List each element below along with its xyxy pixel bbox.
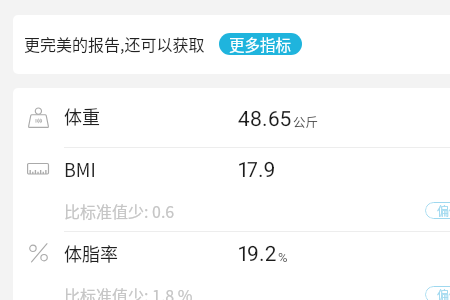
staticText: 公斤 [293, 112, 319, 130]
staticText: 偏低 [437, 202, 450, 219]
staticText: 比标准值少: 1.8 % [64, 283, 193, 300]
staticText: 17.9 [238, 158, 276, 183]
button[interactable]: 偏低 [425, 202, 450, 219]
staticText: 48.65 [238, 107, 292, 132]
button[interactable]: 更多指标 [219, 33, 302, 55]
staticText: 更多指标 [229, 33, 292, 55]
staticText: 偏低 [437, 286, 450, 300]
staticText: 19.2 [238, 242, 277, 267]
button[interactable]: Weight [13, 88, 450, 147]
button[interactable]: BMI [13, 148, 450, 231]
other: Weight [28, 107, 49, 128]
staticText: 比标准值少: 0.6 [64, 199, 175, 222]
staticText: % [278, 250, 288, 265]
staticText: 体脂率 [64, 240, 118, 266]
staticText: 体重 [64, 103, 100, 129]
staticText: BMI [64, 156, 96, 182]
other: BMI [28, 159, 49, 180]
button[interactable]: Body fat percent [13, 232, 450, 300]
other: Body fat percent [28, 243, 49, 264]
button[interactable]: 偏低 [425, 286, 450, 300]
staticText: 更完美的报告,还可以获取 [24, 32, 205, 55]
